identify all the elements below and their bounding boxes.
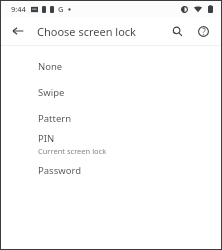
button[interactable]: Swipe [1,79,221,105]
staticText: None [38,60,63,73]
staticText: Swipe [38,86,65,99]
staticText: 9:44 [11,4,26,14]
staticText: Choose screen lock [37,24,136,39]
staticText: Pattern [38,112,72,125]
staticText: PIN [38,132,55,145]
button[interactable]: PIN [1,131,221,157]
button[interactable]: None [1,53,221,79]
staticText: G [58,4,64,14]
button[interactable]: Pattern [1,105,221,131]
staticText: Password [38,164,81,177]
button[interactable]: Search [165,19,189,43]
button[interactable]: Help [191,19,215,43]
staticText: Current screen lock [38,146,107,156]
button[interactable]: Back [6,19,30,43]
button[interactable]: Password [1,157,221,183]
staticText: ? [202,26,206,37]
